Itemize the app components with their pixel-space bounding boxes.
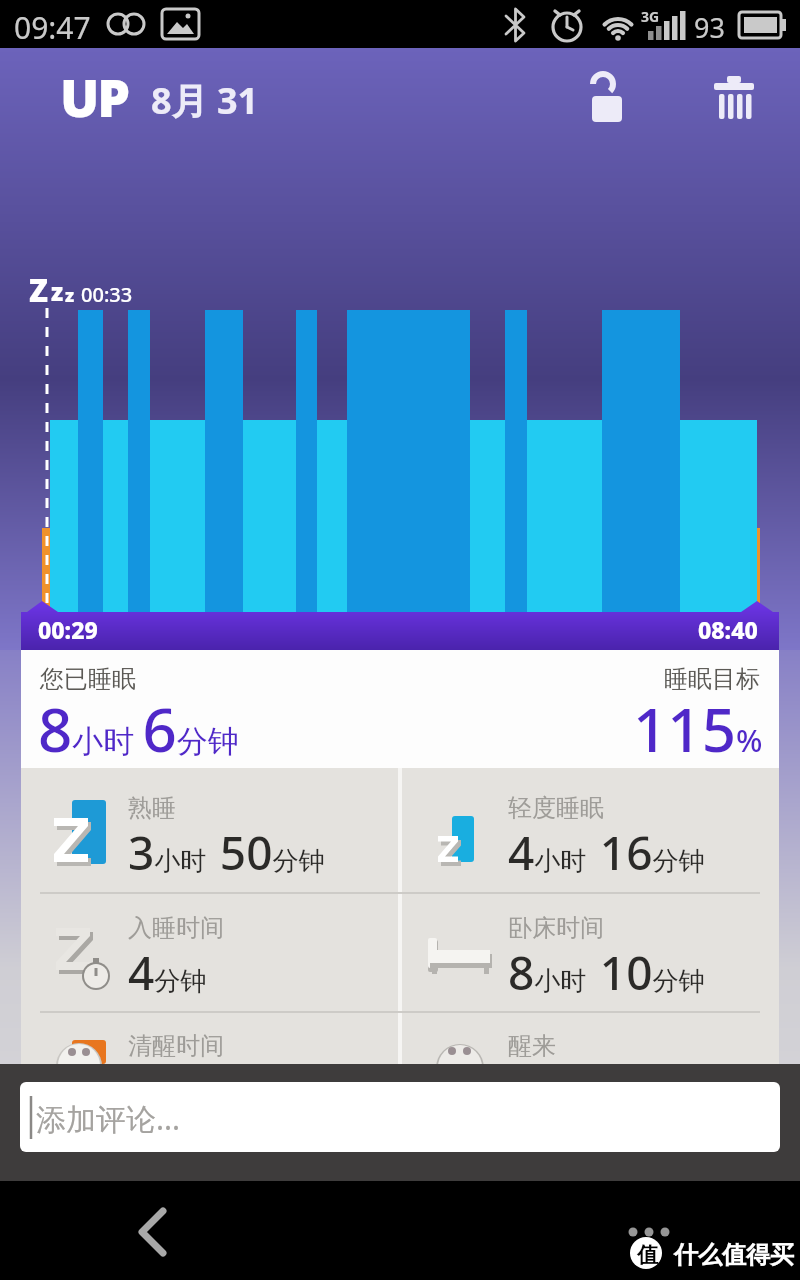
staticText: 4小时 16分钟 <box>508 821 705 884</box>
staticText: 8月 31 <box>151 76 259 125</box>
button[interactable] <box>110 1195 200 1270</box>
staticText: Z <box>29 269 48 311</box>
staticText: 08:40 <box>698 614 758 645</box>
staticText: 8小时 6分钟 <box>38 688 239 770</box>
staticText: 清醒时间 <box>128 1031 224 1061</box>
staticText: 睡眠目标 <box>664 664 760 694</box>
staticText: 醒来 <box>508 1031 556 1061</box>
staticText: 3小时 50分钟 <box>128 821 325 884</box>
staticText: 卧床时间 <box>508 913 604 943</box>
staticText: 值 <box>637 1242 658 1268</box>
staticText: 00:33 <box>81 281 133 308</box>
button[interactable] <box>580 70 636 130</box>
button[interactable] <box>615 1205 685 1255</box>
staticText: z <box>51 275 64 308</box>
staticText: 09:47 <box>14 7 91 48</box>
staticText: 115% <box>633 688 763 770</box>
staticText: 3G <box>641 7 660 26</box>
staticText: 00:29 <box>38 614 98 645</box>
staticText: 轻度睡眠 <box>508 793 604 823</box>
button[interactable] <box>706 70 762 130</box>
staticText: UP <box>60 61 129 132</box>
button[interactable] <box>20 1082 780 1152</box>
staticText: 入睡时间 <box>128 913 224 943</box>
staticText: 4分钟 <box>128 941 207 1004</box>
staticText: 93 <box>694 9 725 46</box>
staticText: 8小时 10分钟 <box>508 941 705 1004</box>
staticText: 熟睡 <box>128 793 176 823</box>
staticText: z <box>65 283 75 308</box>
staticText: 什么值得买 <box>674 1240 794 1270</box>
staticText: 您已睡眠 <box>40 664 136 694</box>
staticText: 添加评论... <box>36 1098 181 1139</box>
